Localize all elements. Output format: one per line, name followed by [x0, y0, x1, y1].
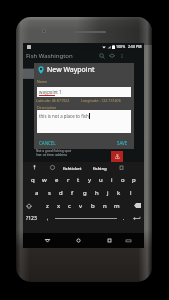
- button[interactable]: Shift: [26, 203, 32, 209]
- staticText: fishing: [93, 165, 107, 171]
- staticText: n: [103, 202, 107, 210]
- staticText: this is not a place to fish: [39, 113, 89, 119]
- staticText: 100%: [116, 44, 126, 49]
- button[interactable]: d: [59, 189, 63, 197]
- staticText: CANCEL: [39, 140, 56, 146]
- staticText: q: [31, 176, 35, 184]
- button[interactable]: More options: [119, 53, 125, 59]
- button[interactable]: Backspace: [134, 203, 141, 208]
- staticText: Fish Washington: [26, 52, 73, 60]
- staticText: z: [46, 202, 49, 210]
- button[interactable]: n: [103, 202, 107, 210]
- staticText: ?123: [26, 215, 37, 222]
- staticText: Latitude: 46.871922: [36, 98, 70, 103]
- button[interactable]: r: [67, 176, 70, 184]
- button[interactable]: Enter: [133, 216, 140, 221]
- staticText: .: [123, 215, 125, 222]
- staticText: r: [67, 176, 70, 184]
- button[interactable]: p: [132, 176, 136, 184]
- staticText: New Waypoint: [47, 65, 95, 75]
- staticText: o: [121, 176, 125, 184]
- button[interactable]: Delete: [119, 165, 124, 170]
- button[interactable]: ,: [47, 215, 49, 222]
- button[interactable]: i: [111, 176, 113, 184]
- button[interactable]: j: [107, 189, 109, 197]
- staticText: Not a good fishing spot: [36, 149, 72, 153]
- button[interactable]: Home: [76, 238, 81, 243]
- staticText: SAVE: [117, 140, 128, 146]
- staticText: Description: [37, 105, 57, 110]
- staticText: g: [83, 189, 87, 197]
- staticText: d: [59, 189, 63, 197]
- staticText: m: [114, 202, 120, 210]
- staticText: Name: [37, 79, 48, 84]
- button[interactable]: f: [71, 189, 74, 197]
- staticText: y: [88, 176, 92, 184]
- button[interactable]: Layers: [109, 53, 115, 59]
- button[interactable]: SAVE: [117, 140, 128, 146]
- button[interactable]: t: [77, 176, 80, 184]
- button[interactable]: z: [46, 202, 49, 210]
- staticText: w: [42, 176, 47, 184]
- button[interactable]: b: [91, 202, 95, 210]
- button[interactable]: w: [42, 176, 47, 184]
- staticText: f: [71, 189, 74, 197]
- staticText: x: [57, 202, 61, 210]
- button[interactable]: .: [123, 215, 125, 222]
- button[interactable]: Voice input: [32, 165, 37, 170]
- button[interactable]: h: [95, 189, 99, 197]
- staticText: l: [130, 189, 132, 197]
- staticText: a: [35, 189, 39, 197]
- button[interactable]: fishticket: [63, 165, 82, 171]
- staticText: c: [68, 202, 71, 210]
- button[interactable]: CANCEL: [39, 140, 56, 146]
- staticText: waypoint 1: [39, 89, 62, 95]
- button[interactable]: y: [88, 176, 92, 184]
- button[interactable]: Hide keyboard: [126, 239, 131, 243]
- staticText: t: [77, 176, 80, 184]
- staticText: ⚓: [114, 153, 121, 161]
- staticText: ,: [47, 215, 49, 222]
- staticText: Longitude: -122.731406: [81, 98, 121, 103]
- button[interactable]: m: [114, 202, 120, 210]
- staticText: u: [99, 176, 103, 184]
- button[interactable]: g: [83, 189, 87, 197]
- staticText: i: [111, 176, 113, 184]
- staticText: line: at time: address: [36, 153, 68, 157]
- staticText: j: [107, 189, 109, 197]
- staticText: p: [132, 176, 136, 184]
- staticText: h: [95, 189, 99, 197]
- staticText: fishticket: [63, 165, 82, 171]
- staticText: k: [117, 189, 121, 197]
- button[interactable]: Recents: [107, 238, 112, 243]
- button[interactable]: ?123: [26, 215, 37, 222]
- button[interactable]: q: [31, 176, 35, 184]
- button[interactable]: a: [35, 189, 39, 197]
- staticText: s: [48, 189, 51, 197]
- button[interactable]: o: [121, 176, 125, 184]
- button[interactable]: Search: [50, 165, 55, 170]
- staticText: e: [55, 176, 59, 184]
- button[interactable]: Back: [45, 238, 50, 243]
- button[interactable]: v: [79, 202, 83, 210]
- button[interactable]: l: [130, 189, 132, 197]
- button[interactable]: k: [117, 189, 121, 197]
- button[interactable]: fishing: [93, 165, 107, 171]
- button[interactable]: x: [57, 202, 61, 210]
- button[interactable]: c: [68, 202, 71, 210]
- staticText: v: [79, 202, 83, 210]
- staticText: 2:50 PM: [128, 44, 142, 49]
- button[interactable]: Search: [99, 53, 105, 59]
- staticText: b: [91, 202, 95, 210]
- button[interactable]: u: [99, 176, 103, 184]
- button[interactable]: e: [55, 176, 59, 184]
- button[interactable]: s: [48, 189, 51, 197]
